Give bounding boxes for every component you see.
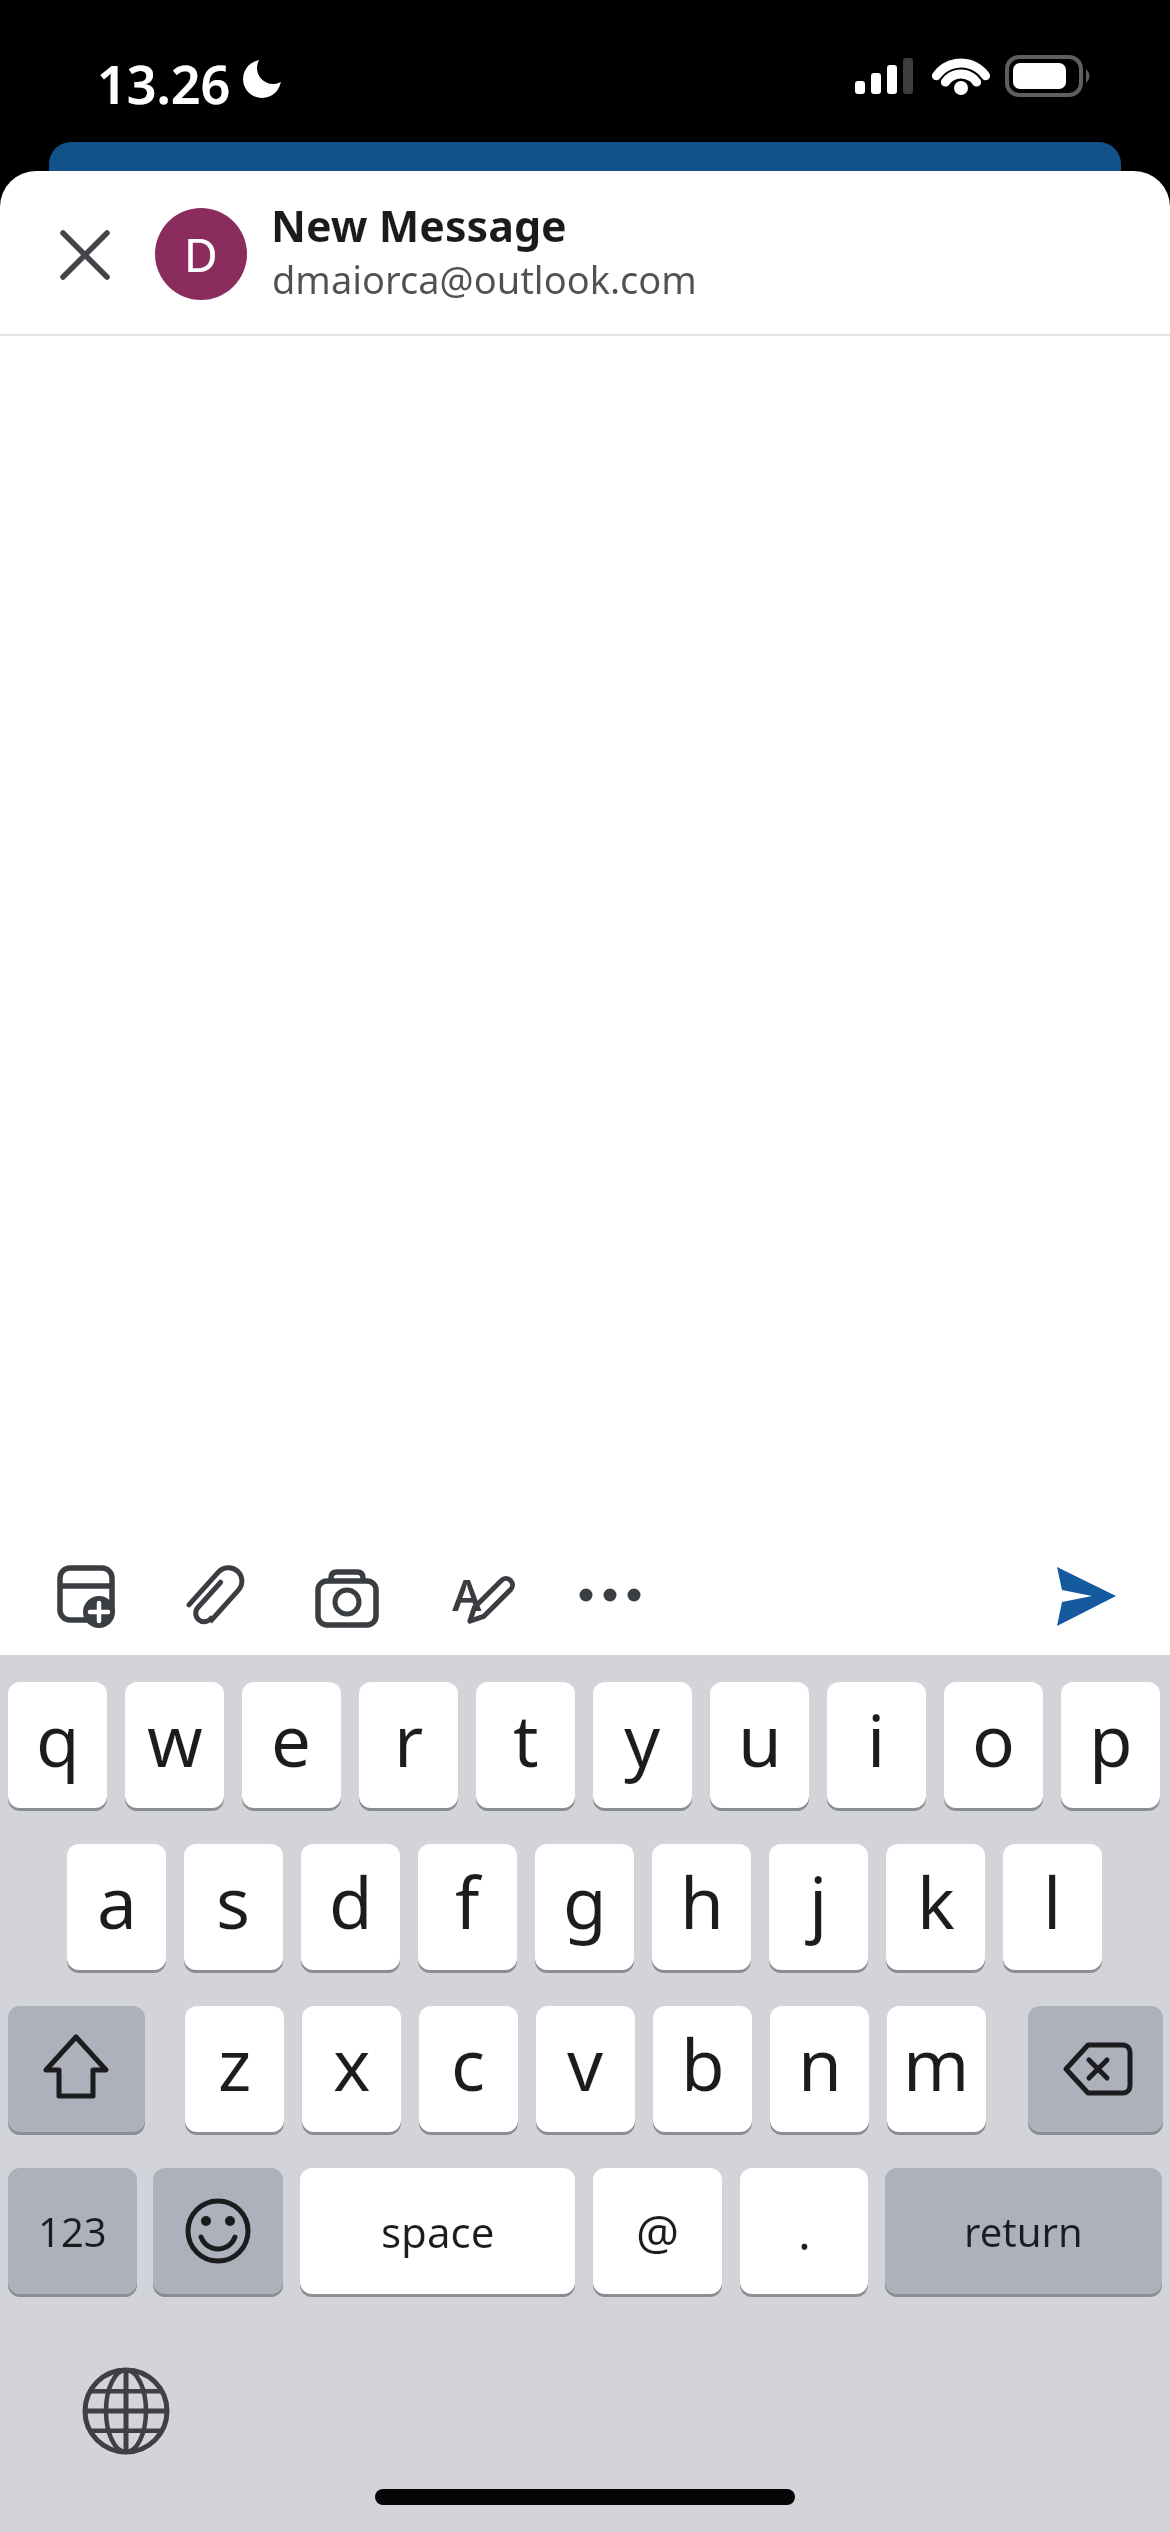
staticText: l — [1043, 1853, 1062, 1950]
button[interactable]: d — [301, 1844, 400, 1970]
staticText: k — [917, 1853, 955, 1950]
button[interactable]: l — [1003, 1844, 1102, 1970]
button[interactable] — [1050, 1562, 1120, 1632]
button[interactable]: n — [770, 2006, 869, 2132]
button[interactable]: s — [184, 1844, 283, 1970]
button[interactable]: g — [535, 1844, 634, 1970]
staticText: space — [381, 2203, 495, 2260]
button[interactable] — [8, 2006, 145, 2132]
staticText: D — [184, 223, 218, 286]
button[interactable]: t — [476, 1682, 575, 1808]
button[interactable]: a — [67, 1844, 166, 1970]
staticText: n — [798, 2015, 842, 2112]
button[interactable]: space — [300, 2168, 575, 2294]
button[interactable]: c — [419, 2006, 518, 2132]
staticText: h — [680, 1853, 724, 1950]
staticText: dmaiorca@outlook.com — [272, 253, 697, 305]
button[interactable]: o — [944, 1682, 1043, 1808]
button[interactable]: . — [740, 2168, 868, 2294]
staticText: f — [455, 1853, 480, 1950]
staticText: v — [567, 2015, 604, 2112]
button[interactable]: e — [242, 1682, 341, 1808]
button[interactable]: f — [418, 1844, 517, 1970]
button[interactable]: 123 — [8, 2168, 137, 2294]
button[interactable]: x — [302, 2006, 401, 2132]
staticText: 13.26 — [97, 48, 231, 119]
button[interactable] — [578, 1562, 644, 1628]
staticText: b — [681, 2015, 725, 2112]
button[interactable]: r — [359, 1682, 458, 1808]
button[interactable]: u — [710, 1682, 809, 1808]
staticText: y — [624, 1691, 661, 1788]
staticText: u — [738, 1691, 782, 1788]
button[interactable] — [314, 1562, 380, 1628]
button[interactable] — [80, 2365, 172, 2457]
button[interactable] — [180, 1562, 246, 1628]
button[interactable]: m — [887, 2006, 986, 2132]
staticText: s — [216, 1853, 251, 1950]
staticText: a — [97, 1853, 137, 1950]
button[interactable]: y — [593, 1682, 692, 1808]
button[interactable]: p — [1061, 1682, 1160, 1808]
staticText: e — [271, 1691, 312, 1788]
staticText: z — [218, 2015, 252, 2112]
button[interactable]: b — [653, 2006, 752, 2132]
staticText: d — [329, 1853, 373, 1950]
staticText: t — [513, 1691, 539, 1788]
staticText: o — [972, 1691, 1015, 1788]
staticText: p — [1089, 1691, 1133, 1788]
button[interactable] — [1028, 2006, 1163, 2132]
staticText: x — [333, 2015, 371, 2112]
staticText: w — [147, 1691, 203, 1788]
staticText: m — [903, 2015, 970, 2112]
button[interactable]: v — [536, 2006, 635, 2132]
button[interactable]: return — [885, 2168, 1162, 2294]
button[interactable] — [51, 221, 119, 289]
staticText: g — [563, 1853, 607, 1950]
button[interactable] — [153, 2168, 283, 2294]
button[interactable]: i — [827, 1682, 926, 1808]
staticText: A — [452, 1564, 482, 1624]
button[interactable]: @ — [593, 2168, 722, 2294]
staticText: c — [451, 2015, 486, 2112]
button[interactable]: k — [886, 1844, 985, 1970]
button[interactable]: h — [652, 1844, 751, 1970]
button[interactable]: j — [769, 1844, 868, 1970]
staticText: 123 — [38, 2204, 107, 2258]
staticText: j — [809, 1853, 828, 1950]
staticText: return — [964, 2204, 1083, 2258]
staticText: . — [798, 2199, 811, 2264]
button[interactable]: w — [125, 1682, 224, 1808]
staticText: @ — [636, 2199, 680, 2264]
staticText: New Message — [271, 196, 567, 255]
staticText: r — [394, 1691, 424, 1788]
button[interactable] — [448, 1562, 514, 1628]
button[interactable]: q — [8, 1682, 107, 1808]
button[interactable]: z — [185, 2006, 284, 2132]
staticText: q — [36, 1691, 80, 1788]
button[interactable] — [52, 1562, 118, 1628]
staticText: i — [867, 1691, 886, 1788]
